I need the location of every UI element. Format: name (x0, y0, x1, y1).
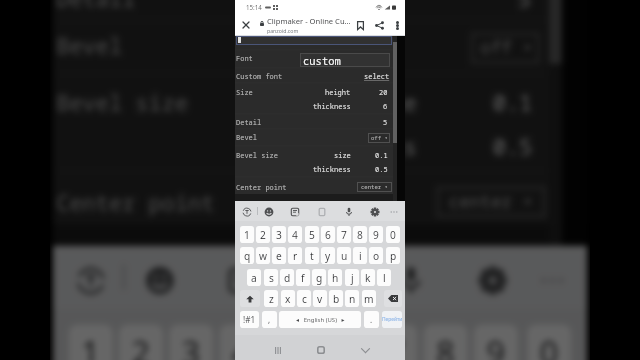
staticText: Bevel size (56, 89, 188, 120)
button[interactable]: 7 (337, 226, 351, 243)
button[interactable]: y (321, 247, 335, 264)
button[interactable]: d (280, 269, 294, 286)
button[interactable]: Clipboard (301, 255, 348, 302)
button[interactable]: b (329, 290, 343, 307)
staticText: r (293, 249, 298, 263)
staticText: c (302, 292, 307, 306)
button[interactable]: r (288, 247, 302, 264)
button[interactable]: f (296, 269, 310, 286)
button[interactable]: t (305, 247, 319, 264)
button[interactable]: 7 (373, 324, 417, 360)
staticText: 9 (486, 331, 505, 360)
button[interactable]: m (362, 290, 376, 307)
staticText: d (284, 271, 291, 285)
button[interactable]: Shift (240, 290, 260, 307)
button[interactable]: c (297, 290, 311, 307)
button[interactable]: 3 (169, 324, 213, 360)
staticText: n (349, 292, 356, 306)
button[interactable]: j (345, 269, 359, 286)
button[interactable]: 2 (119, 324, 163, 360)
button[interactable]: e (272, 247, 286, 264)
button[interactable]: 5 (305, 226, 319, 243)
button[interactable]: g (312, 269, 326, 286)
button[interactable]: Share (371, 17, 388, 34)
button[interactable]: , (262, 311, 277, 328)
button[interactable]: w (256, 247, 270, 264)
button[interactable]: p (386, 247, 400, 264)
button[interactable]: Recents (268, 340, 288, 360)
button[interactable]: 9 (474, 324, 518, 360)
staticText: custom (303, 54, 341, 68)
button[interactable]: Home (311, 340, 331, 360)
button[interactable]: Keyboard settings (468, 255, 515, 302)
button[interactable]: Keyboard settings (367, 204, 382, 219)
staticText: 9 (373, 228, 379, 242)
staticText: q (244, 249, 251, 263)
button[interactable]: i (353, 247, 367, 264)
button[interactable]: More options (389, 17, 406, 34)
button[interactable]: o (369, 247, 383, 264)
staticText: i (359, 249, 362, 263)
staticText: height (325, 88, 351, 98)
button[interactable]: 1 (69, 324, 113, 360)
button[interactable]: 4 (219, 324, 263, 360)
button[interactable]: a (247, 269, 261, 286)
button[interactable]: Clipboard (314, 204, 329, 219)
staticText: 0.5 (493, 133, 533, 164)
staticText: Center point (236, 183, 287, 193)
staticText: b (333, 292, 340, 306)
button[interactable]: 6 (321, 226, 335, 243)
button[interactable]: . (364, 311, 379, 328)
button[interactable]: h (328, 269, 342, 286)
button[interactable]: 6 (323, 324, 367, 360)
button[interactable]: l (377, 269, 391, 286)
button[interactable]: 2 (256, 226, 270, 243)
button[interactable]: 3 (272, 226, 286, 243)
button[interactable]: 5 (273, 324, 317, 360)
button[interactable]: 4 (288, 226, 302, 243)
staticText: 0.1 (375, 151, 388, 161)
staticText: z (269, 292, 274, 306)
staticText: panzoid.com (267, 27, 299, 34)
button[interactable]: 0 (386, 226, 400, 243)
staticText: u (341, 249, 348, 263)
button[interactable]: 9 (369, 226, 383, 243)
button[interactable]: u (337, 247, 351, 264)
staticText: h (332, 271, 339, 285)
button[interactable]: Bookmark (352, 17, 369, 34)
button[interactable]: s (264, 269, 278, 286)
button[interactable]: Stickers (216, 255, 263, 302)
button[interactable]: n (345, 290, 359, 307)
button[interactable]: Backspace (384, 290, 402, 307)
button[interactable]: More options (386, 204, 401, 219)
button[interactable]: Voice input (341, 204, 356, 219)
button[interactable]: Close (237, 16, 255, 34)
button[interactable]: Voice input (386, 255, 433, 302)
button[interactable]: Перейти (382, 311, 402, 328)
button[interactable]: 8 (424, 324, 468, 360)
staticText: 7 (341, 228, 347, 242)
button[interactable]: Stickers (287, 204, 302, 219)
button[interactable]: q (240, 247, 254, 264)
staticText: 5 (309, 228, 315, 242)
button[interactable]: Text mode (66, 255, 113, 302)
button[interactable]: 0 (527, 324, 571, 360)
button[interactable]: x (281, 290, 295, 307)
button[interactable]: v (313, 290, 327, 307)
button[interactable]: !#1 (240, 311, 259, 328)
button[interactable]: Emoji (135, 255, 182, 302)
staticText: center ▾ (449, 189, 533, 214)
button[interactable]: Text mode (239, 204, 254, 219)
button[interactable]: Emoji (261, 204, 276, 219)
staticText: 2 (260, 228, 266, 242)
staticText: off ▾ (480, 36, 533, 61)
button[interactable]: z (264, 290, 278, 307)
button[interactable]: 1 (240, 226, 254, 243)
button[interactable]: Hide keyboard (355, 340, 375, 360)
button[interactable]: Space (279, 311, 361, 328)
button[interactable]: k (361, 269, 375, 286)
button[interactable]: 8 (353, 226, 367, 243)
